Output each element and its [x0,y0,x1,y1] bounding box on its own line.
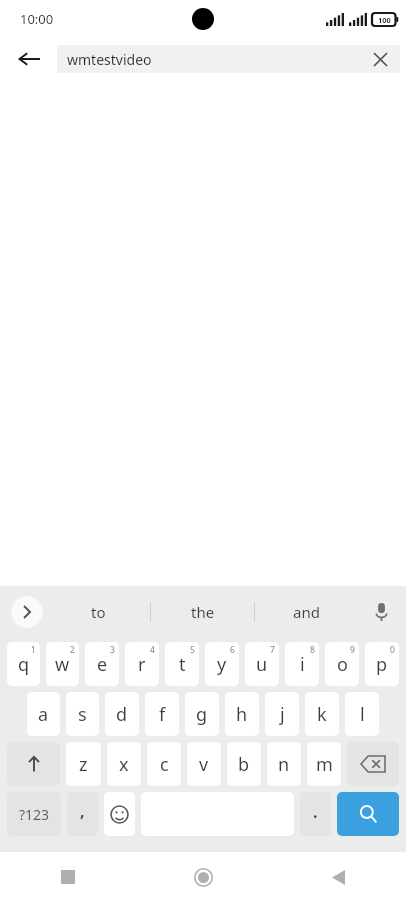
staticText: 8 [310,644,315,656]
button[interactable]: f [145,692,179,736]
staticText: y [217,652,227,677]
staticText: z [79,752,88,777]
staticText: , [80,800,85,822]
button[interactable]: Shift [7,742,60,786]
button[interactable]: c [147,742,181,786]
staticText: s [78,702,87,727]
button[interactable]: n [267,742,301,786]
staticText: l [360,702,365,727]
staticText: f [159,702,166,727]
staticText: the [191,602,215,622]
button[interactable]: l [345,692,379,736]
button[interactable]: More suggestions [11,596,43,628]
button[interactable]: e [85,642,119,686]
staticText: p [376,652,388,677]
button[interactable]: d [105,692,139,736]
staticText: k [317,702,327,727]
staticText: wmtestvideo [67,50,152,69]
staticText: d [116,702,128,727]
button[interactable]: Back [9,39,49,79]
button[interactable]: k [305,692,339,736]
staticText: e [97,652,108,677]
button[interactable]: to [46,586,150,638]
button[interactable]: Home [136,852,271,902]
staticText: r [138,652,146,677]
button[interactable]: m [307,742,341,786]
button[interactable]: y [205,642,239,686]
button[interactable]: the [151,586,254,638]
button[interactable]: w [46,642,79,686]
button[interactable]: u [245,642,279,686]
button[interactable]: Backspace [347,742,399,786]
staticText: b [238,752,250,777]
button[interactable]: wmtestvideo [57,45,400,73]
button[interactable]: b [227,742,261,786]
button[interactable]: x [107,742,141,786]
button[interactable]: r [125,642,159,686]
staticText: q [18,652,30,677]
button[interactable]: ?123 [7,792,61,836]
staticText: to [91,602,106,622]
staticText: n [278,752,290,777]
staticText: v [199,752,209,777]
staticText: m [316,752,333,777]
button[interactable]: and [255,586,358,638]
button[interactable]: Back [271,852,406,902]
button[interactable]: s [66,692,99,736]
staticText: h [236,702,248,727]
staticText: 10:00 [20,10,54,28]
button[interactable]: Search [337,792,399,836]
button[interactable]: j [265,692,299,736]
staticText: 0 [390,644,395,656]
staticText: 6 [230,644,235,656]
staticText: x [119,752,129,777]
staticText: 2 [70,644,75,656]
staticText: w [55,652,70,677]
staticText: 4 [150,644,155,656]
button[interactable]: v [187,742,221,786]
button[interactable]: t [165,642,199,686]
button[interactable]: Clear [368,47,392,71]
staticText: i [300,652,305,677]
staticText: 9 [350,644,355,656]
button[interactable]: o [325,642,359,686]
staticText: u [256,652,268,677]
button[interactable]: Voice input [364,595,398,629]
staticText: 1 [31,644,36,656]
staticText: 7 [270,644,275,656]
staticText: o [337,652,348,677]
button[interactable]: z [66,742,101,786]
button[interactable]: a [27,692,60,736]
staticText: t [179,652,186,677]
button[interactable]: Recents [0,852,136,902]
button[interactable]: i [285,642,319,686]
button[interactable]: , [67,792,98,836]
staticText: 3 [110,644,115,656]
button[interactable]: p [365,642,399,686]
button[interactable]: q [7,642,40,686]
staticText: 5 [190,644,195,656]
button[interactable]: . [300,792,331,836]
button[interactable]: Emoji [104,792,135,836]
staticText: a [38,702,49,727]
button[interactable]: g [185,692,219,736]
staticText: ?123 [19,805,50,824]
staticText: j [280,702,285,727]
button[interactable]: h [225,692,259,736]
staticText: 100 [378,15,391,25]
staticText: g [196,702,208,727]
staticText: and [293,602,320,622]
staticText: c [160,752,169,777]
staticText: . [313,801,318,823]
